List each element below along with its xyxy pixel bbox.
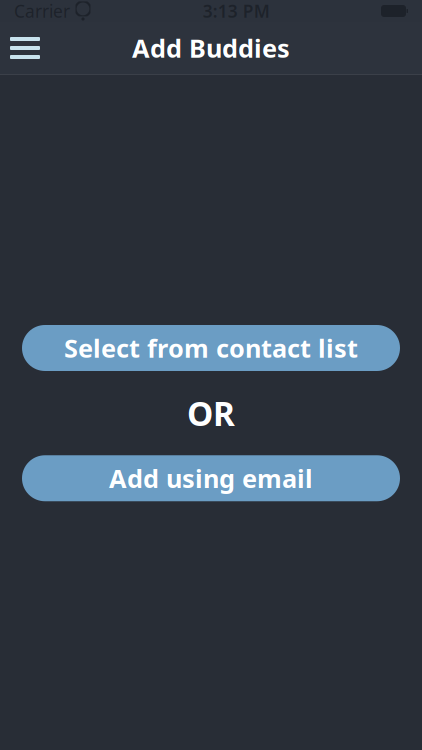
button[interactable]: Add using email <box>22 455 400 501</box>
button[interactable]: Menu <box>0 28 50 68</box>
staticText: Select from contact list <box>64 331 358 365</box>
staticText: Carrier <box>14 0 70 22</box>
staticText: Add using email <box>109 461 313 495</box>
staticText: 3:13 PM <box>203 0 270 22</box>
staticText: OR <box>187 391 235 435</box>
button[interactable]: Select from contact list <box>22 325 400 371</box>
staticText: Add Buddies <box>132 31 290 65</box>
